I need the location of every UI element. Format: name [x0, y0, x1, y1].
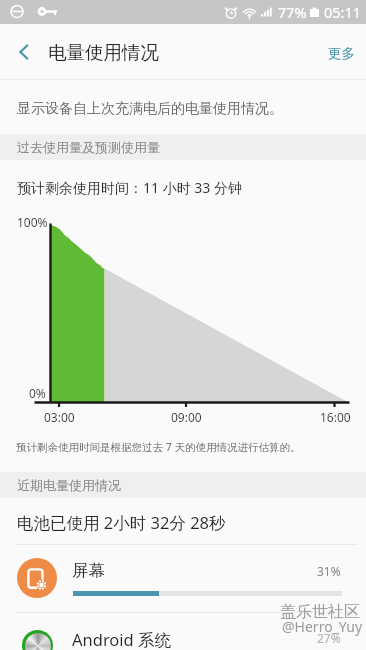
staticText: 屏幕: [72, 560, 105, 581]
staticText: 显示设备自上次充满电后的电量使用情况。: [17, 100, 283, 118]
staticText: 27%: [317, 630, 341, 646]
staticText: 16:00: [320, 409, 351, 425]
staticText: 03:00: [44, 409, 75, 425]
button[interactable]: 更多: [312, 25, 366, 80]
staticText: 31%: [317, 563, 341, 579]
staticText: 近期电量使用情况: [17, 477, 121, 493]
staticText: 05:11: [324, 2, 362, 22]
staticText: @Herro_Yuy: [282, 617, 363, 636]
button[interactable]: 屏幕: [0, 545, 366, 612]
staticText: 77%: [278, 2, 307, 22]
button[interactable]: Back: [0, 28, 48, 76]
staticText: 100%: [17, 214, 48, 230]
staticText: 09:00: [171, 409, 202, 425]
staticText: 过去使用量及预测使用量: [17, 139, 160, 155]
staticText: 更多: [328, 45, 355, 62]
button[interactable]: Android 系统: [0, 613, 366, 650]
staticText: 电量使用情况: [48, 41, 159, 64]
staticText: Android 系统: [72, 628, 172, 650]
staticText: 0%: [29, 385, 46, 401]
staticText: 盖乐世社区: [280, 602, 360, 622]
staticText: 预计剩余使用时间：11 小时 33 分钟: [17, 178, 242, 197]
staticText: 电池已使用 2小时 32分 28秒: [17, 511, 226, 534]
staticText: 预计剩余使用时间是根据您过去 7 天的使用情况进行估算的。: [16, 440, 301, 454]
